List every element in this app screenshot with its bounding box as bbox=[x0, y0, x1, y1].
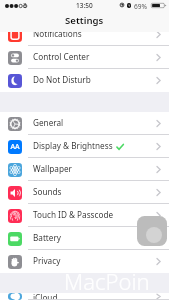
staticText: Control Center bbox=[33, 51, 90, 62]
staticText: Settings bbox=[65, 14, 104, 27]
staticText: Notifications bbox=[33, 28, 82, 39]
button[interactable]: Notifications bbox=[0, 23, 169, 46]
staticText: 69% bbox=[134, 2, 148, 11]
button[interactable]: Battery bbox=[0, 227, 169, 250]
staticText: AA bbox=[10, 142, 20, 152]
button[interactable]: Do Not Disturb bbox=[0, 69, 169, 92]
staticText: Wallpaper bbox=[33, 163, 72, 174]
staticText: Privacy bbox=[33, 255, 61, 266]
staticText: MacPoin bbox=[64, 266, 150, 296]
button[interactable]: AA bbox=[0, 135, 169, 158]
button[interactable]: Sounds bbox=[0, 181, 169, 204]
staticText: Sounds bbox=[33, 186, 62, 197]
button[interactable]: iCloud bbox=[0, 293, 169, 300]
staticText: iCloud bbox=[33, 292, 58, 299]
button[interactable]: Wallpaper bbox=[0, 158, 169, 181]
staticText: Touch ID & Passcode bbox=[33, 209, 114, 220]
staticText: Do Not Disturb bbox=[33, 74, 91, 85]
staticText: General bbox=[33, 117, 64, 128]
staticText: 3 bbox=[23, 1, 27, 10]
button[interactable]: Control Center bbox=[0, 46, 169, 69]
button[interactable]: AssistiveTouch bbox=[137, 216, 167, 246]
button[interactable]: General bbox=[0, 112, 169, 135]
staticText: 13:50 bbox=[76, 1, 93, 10]
staticText: Battery bbox=[33, 232, 62, 243]
button[interactable]: Privacy bbox=[0, 250, 169, 273]
button[interactable]: Touch ID & Passcode bbox=[0, 204, 169, 227]
staticText: Display & Brightness bbox=[33, 140, 113, 151]
